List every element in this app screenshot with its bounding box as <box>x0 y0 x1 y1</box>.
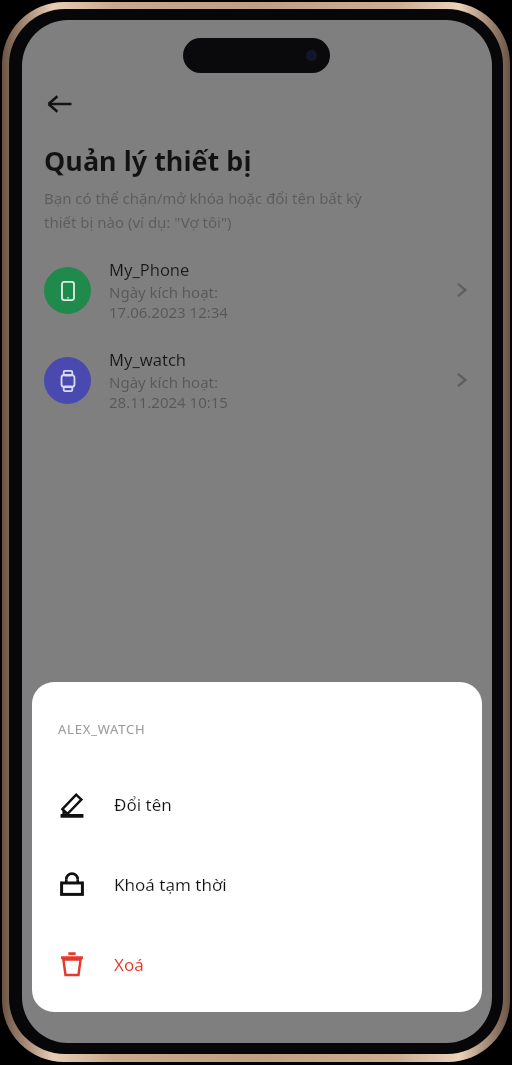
staticText: My_watch <box>109 348 187 370</box>
button[interactable]: Đổi tên <box>32 764 482 844</box>
button[interactable]: Khoá tạm thời <box>32 844 482 924</box>
staticText: Xoá <box>114 953 144 976</box>
staticText: 17.06.2023 12:34 <box>109 302 228 322</box>
staticText: Quản lý thiết bị <box>44 142 252 179</box>
button[interactable]: Xoá <box>32 924 482 1004</box>
staticText: ALEX_WATCH <box>58 720 146 738</box>
button[interactable]: My_Phone <box>22 258 492 322</box>
staticText: Ngày kích hoạt: <box>109 372 219 392</box>
staticText: Đổi tên <box>114 793 172 816</box>
staticText: Bạn có thể chặn/mở khóa hoặc đổi tên bất… <box>44 188 362 232</box>
staticText: 28.11.2024 10:15 <box>109 392 228 412</box>
staticText: Khoá tạm thời <box>114 873 227 896</box>
button[interactable]: Back <box>36 80 84 128</box>
staticText: Ngày kích hoạt: <box>109 282 219 302</box>
button[interactable]: My_watch <box>22 348 492 412</box>
staticText: My_Phone <box>109 258 190 280</box>
